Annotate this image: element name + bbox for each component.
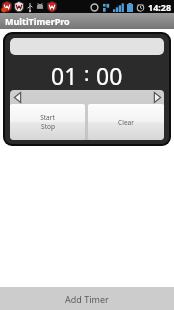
staticText: 14:28 (148, 1, 172, 13)
button[interactable] (10, 38, 164, 55)
button[interactable]: Previous (10, 90, 24, 104)
staticText: Stop (41, 122, 55, 131)
staticText: 00 (96, 60, 123, 86)
button[interactable]: Next (150, 90, 164, 104)
button[interactable]: Clear (88, 104, 164, 140)
staticText: 01 (51, 60, 78, 86)
staticText: Add Timer (65, 293, 109, 305)
staticText: MultiTimerPro (5, 15, 70, 27)
staticText: : (84, 60, 90, 86)
button[interactable]: Start (10, 104, 85, 140)
staticText: Clear (118, 118, 134, 127)
button[interactable]: Add Timer (0, 287, 174, 310)
staticText: Start (40, 113, 55, 122)
